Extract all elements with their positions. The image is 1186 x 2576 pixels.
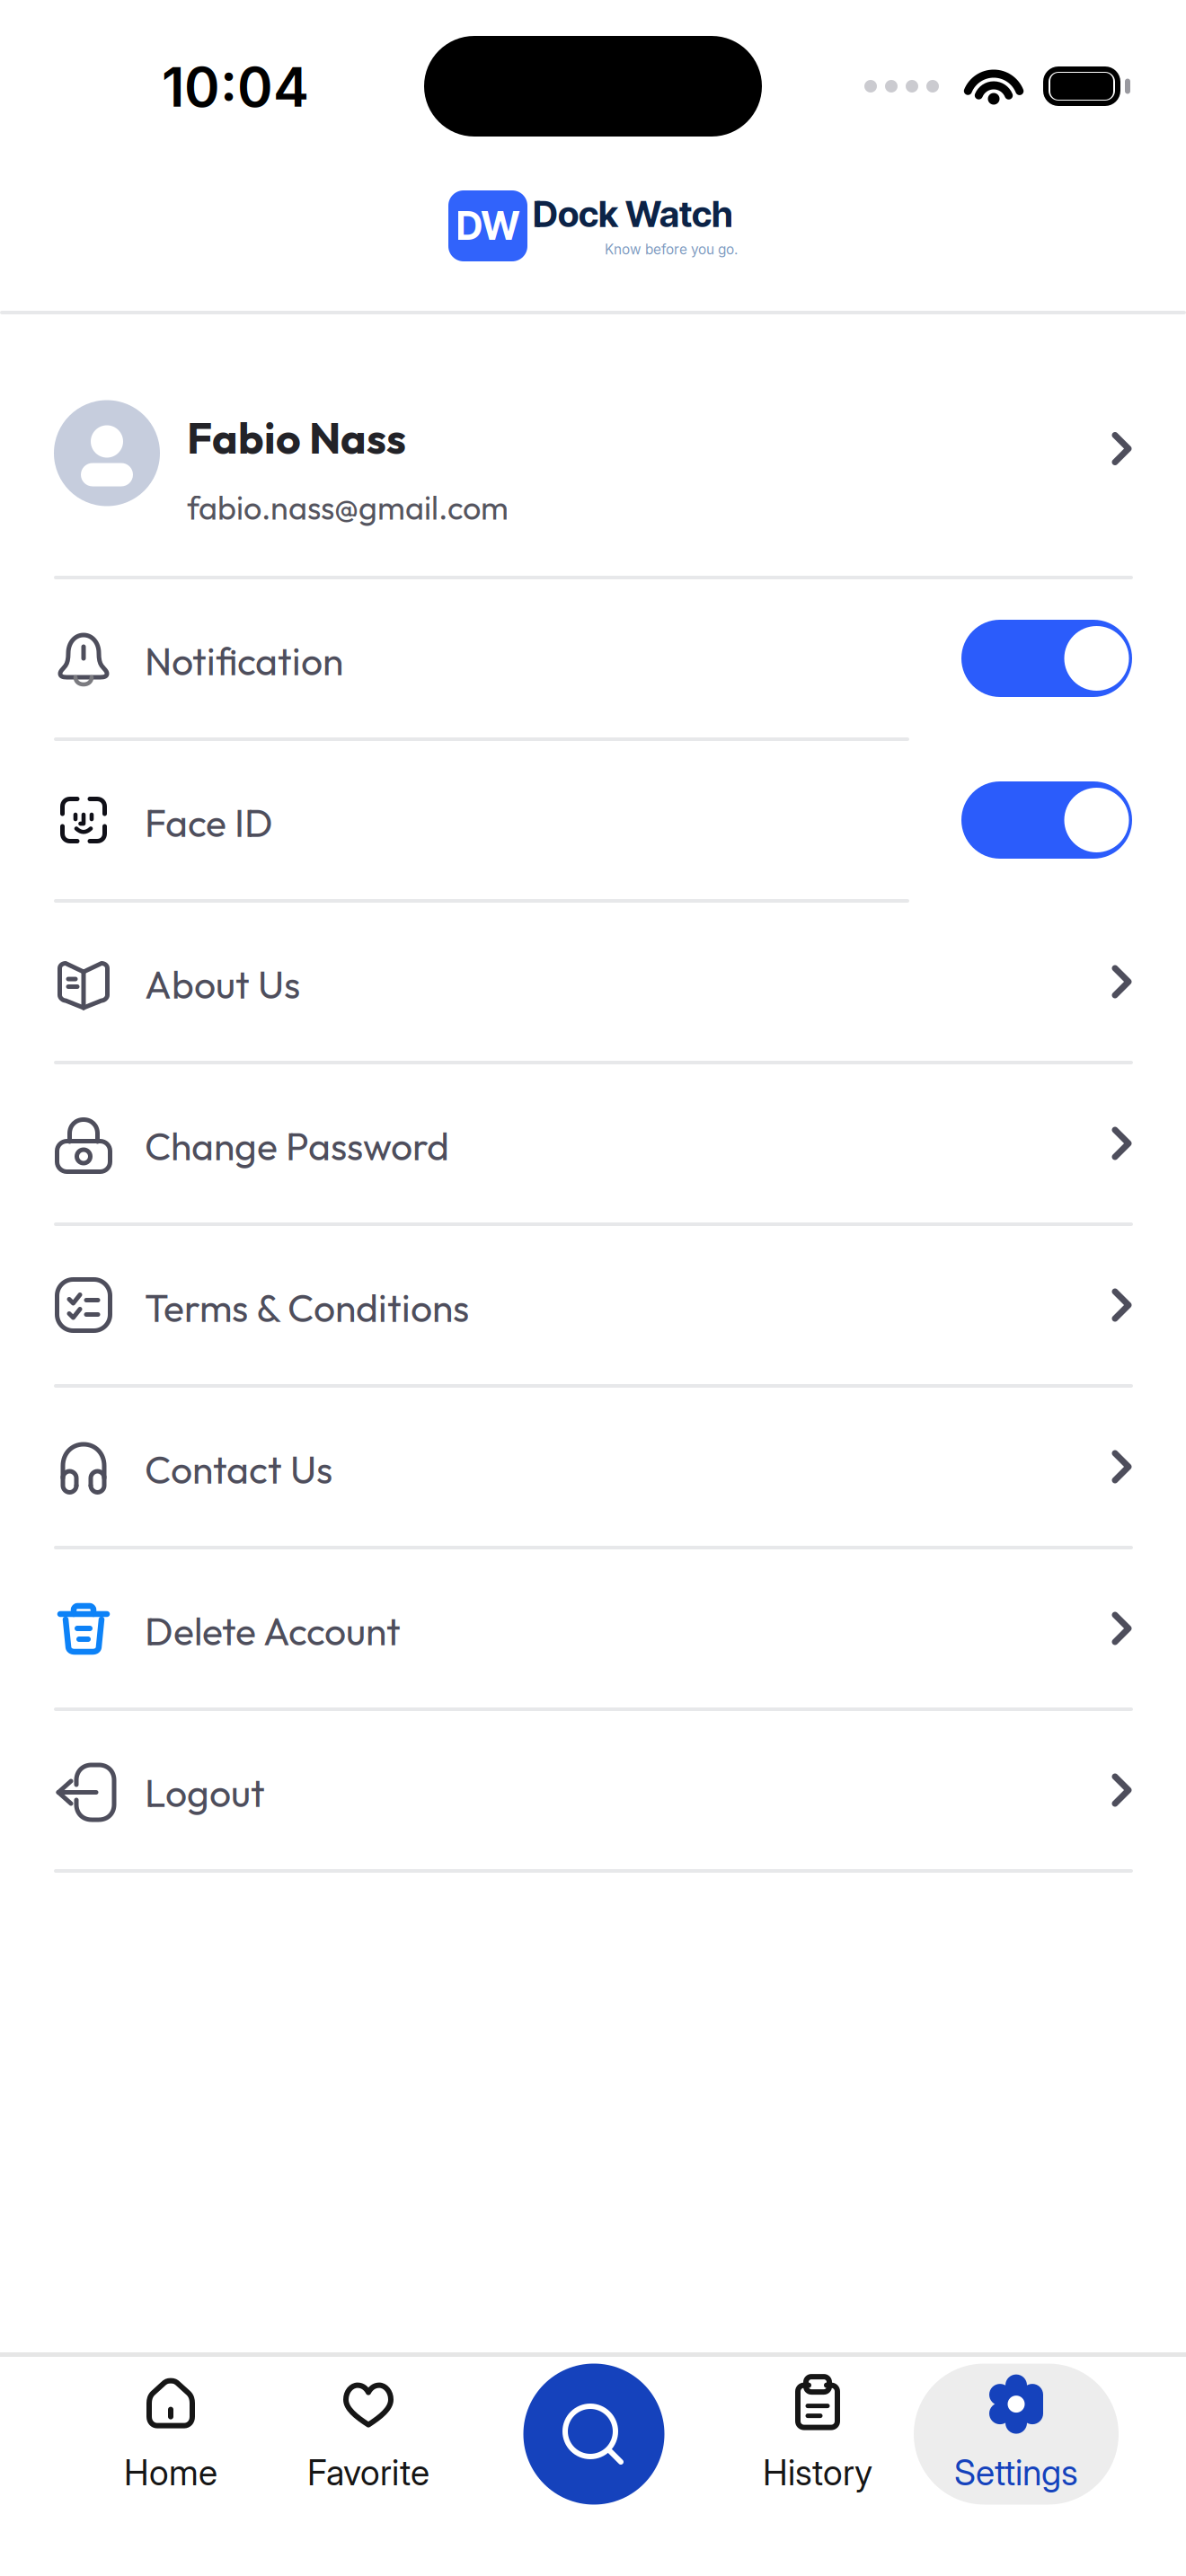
button[interactable]: About Us xyxy=(0,903,1186,1064)
button[interactable]: Search xyxy=(523,2364,664,2505)
button[interactable]: Change Password xyxy=(0,1064,1186,1226)
button[interactable]: Notification xyxy=(0,579,1186,741)
staticText: Change Password xyxy=(145,1122,449,1170)
staticText: DW xyxy=(456,203,520,249)
button[interactable]: Home xyxy=(68,2364,273,2505)
button[interactable]: Logout xyxy=(0,1711,1186,1873)
button[interactable]: Fabio Nass xyxy=(0,314,1186,579)
button[interactable]: Terms & Conditions xyxy=(0,1226,1186,1388)
staticText: Logout xyxy=(145,1769,265,1817)
button[interactable]: Delete Account xyxy=(0,1549,1186,1711)
button[interactable]: Settings xyxy=(914,2364,1119,2505)
staticText: Terms & Conditions xyxy=(145,1284,469,1332)
staticText: History xyxy=(763,2452,872,2494)
staticText: Notification xyxy=(145,637,343,685)
staticText: Face ID xyxy=(145,799,273,847)
staticText: Contact Us xyxy=(145,1445,332,1494)
staticText: Home xyxy=(124,2452,217,2494)
staticText: Settings xyxy=(954,2452,1078,2494)
staticText: Know before you go. xyxy=(605,241,738,258)
button[interactable]: Favorite xyxy=(266,2364,471,2505)
button[interactable]: History xyxy=(715,2364,920,2505)
staticText: Fabio Nass xyxy=(187,411,406,465)
staticText: Delete Account xyxy=(145,1607,401,1655)
staticText: 10:04 xyxy=(162,55,309,120)
staticText: fabio.nass@gmail.com xyxy=(187,487,509,528)
button[interactable]: Contact Us xyxy=(0,1388,1186,1549)
staticText: About Us xyxy=(145,960,300,1009)
button[interactable]: Face ID xyxy=(0,741,1186,903)
staticText: Favorite xyxy=(307,2452,429,2494)
staticText: Dock Watch xyxy=(533,192,733,236)
